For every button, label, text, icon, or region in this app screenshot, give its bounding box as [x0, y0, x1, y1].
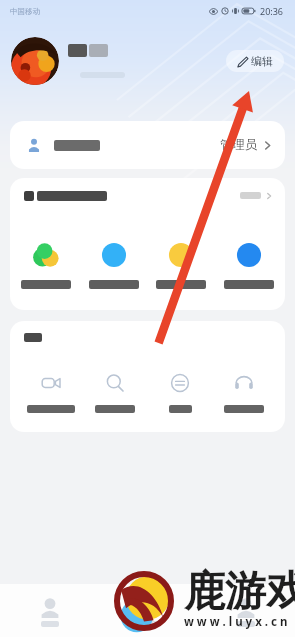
button[interactable]: 客服中心 [216, 373, 272, 413]
button[interactable]: 云盘空间 [14, 241, 78, 289]
staticText: 20:36 [260, 5, 284, 17]
button[interactable]: 编辑 [226, 50, 284, 72]
button[interactable]: 换机 [152, 373, 208, 413]
staticText: 中国移动 [10, 7, 40, 16]
button[interactable]: 视频通话 [23, 373, 79, 413]
staticText: 管理员 [220, 137, 258, 153]
button[interactable]: 会员中心 [217, 241, 281, 289]
button[interactable]: 账号安全 [82, 241, 146, 289]
staticText: 编辑 [251, 54, 273, 68]
button[interactable]: 管理员 [10, 121, 285, 169]
button[interactable]: 查找设备 [87, 373, 143, 413]
button[interactable]: 商城 [99, 584, 197, 637]
staticText: w w w . l u y x . c n [184, 614, 288, 630]
button[interactable]: 我的 [197, 584, 295, 637]
button[interactable]: 我的设备 [149, 241, 213, 289]
button[interactable]: 设备 [0, 584, 99, 637]
staticText: 鹿游戏 [184, 566, 295, 618]
